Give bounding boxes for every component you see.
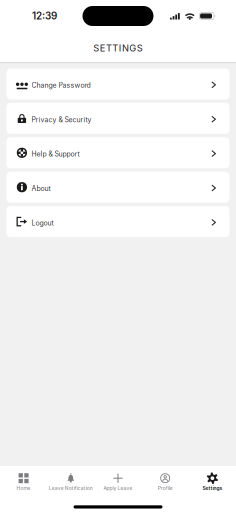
staticText: SETTINGS — [93, 42, 143, 54]
button[interactable]: Leave Notification — [47, 466, 94, 498]
staticText: About — [32, 184, 51, 193]
staticText: Apply Leave — [103, 485, 132, 491]
button[interactable]: Help & Support — [6, 137, 229, 168]
staticText: 12:39 — [32, 10, 57, 22]
staticText: Profile — [158, 485, 173, 491]
staticText: Change Password — [32, 81, 91, 89]
button[interactable]: Profile — [142, 466, 189, 498]
staticText: Settings — [202, 485, 222, 491]
staticText: Help & Support — [32, 150, 80, 158]
button[interactable]: Logout — [6, 206, 229, 237]
staticText: Home — [17, 485, 31, 491]
button[interactable]: About — [6, 172, 229, 203]
button[interactable]: Home — [0, 466, 47, 498]
staticText: Logout — [32, 219, 54, 227]
button[interactable]: Privacy & Security — [6, 103, 229, 134]
button[interactable]: Change Password — [6, 68, 229, 99]
button[interactable]: Settings — [189, 466, 236, 498]
staticText: Privacy & Security — [32, 115, 92, 124]
staticText: Leave Notification — [49, 485, 93, 491]
button[interactable]: Apply Leave — [94, 466, 142, 498]
